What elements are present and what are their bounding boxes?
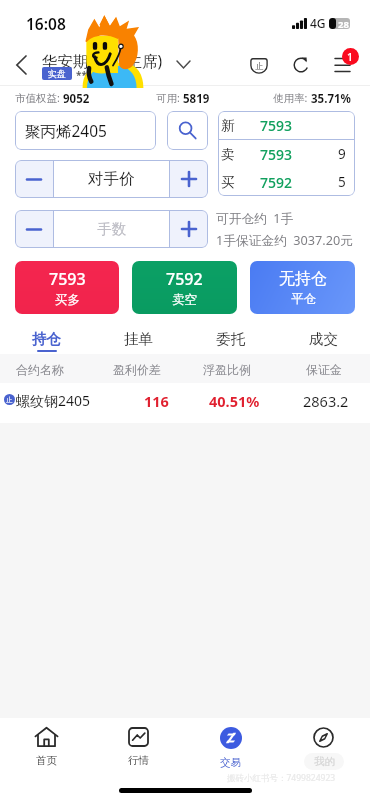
- button[interactable]: 行情: [92, 718, 184, 774]
- staticText: 2863.2: [303, 391, 349, 411]
- button[interactable]: Profile: [277, 718, 370, 774]
- button[interactable]: Refresh: [283, 47, 319, 83]
- staticText: 卖: [221, 146, 235, 163]
- staticText: 买多: [55, 292, 80, 308]
- button[interactable]: 聚丙烯2405: [15, 111, 156, 150]
- staticText: 对手价: [88, 169, 135, 189]
- staticText: 止: [6, 396, 13, 404]
- button[interactable]: Stop loss: [241, 47, 277, 83]
- button[interactable]: Decrease: [15, 210, 53, 248]
- staticText: 持仓: [32, 330, 61, 348]
- staticText: 首页: [36, 754, 57, 767]
- staticText: 浮盈比例: [203, 362, 251, 377]
- button[interactable]: 7592: [132, 261, 237, 314]
- button[interactable]: 止: [0, 383, 370, 423]
- button[interactable]: Back: [3, 47, 39, 83]
- staticText: 使用率:: [273, 91, 308, 105]
- button[interactable]: Increase: [170, 210, 208, 248]
- staticText: 卖空: [172, 292, 197, 308]
- staticText: 聚丙烯2405: [25, 120, 107, 141]
- staticText: 4G: [310, 15, 326, 31]
- staticText: 盈利价差: [113, 362, 161, 377]
- staticText: 5819: [183, 91, 210, 105]
- staticText: 成交: [309, 330, 338, 348]
- staticText: 买: [221, 174, 235, 191]
- staticText: 7593: [49, 268, 86, 290]
- staticText: 平仓: [291, 291, 316, 307]
- staticText: 9: [338, 145, 346, 163]
- button[interactable]: 挂单: [92, 330, 184, 356]
- staticText: 交易: [220, 756, 241, 769]
- button[interactable]: 无持仓: [250, 261, 355, 314]
- staticText: 保证金: [306, 362, 342, 377]
- staticText: 实盘: [48, 68, 66, 79]
- button[interactable]: 首页: [0, 718, 92, 774]
- button[interactable]: 手数: [54, 210, 169, 248]
- staticText: 7593: [260, 116, 293, 135]
- staticText: 1手保证金约 3037.20元: [216, 231, 353, 248]
- staticText: 华安期货01(主席): [42, 50, 163, 71]
- button[interactable]: 7593: [15, 261, 119, 314]
- button[interactable]: Menu: [326, 47, 362, 83]
- button[interactable]: Switch account: [172, 52, 196, 76]
- button[interactable]: 交易: [184, 718, 277, 774]
- staticText: **: [76, 68, 87, 82]
- staticText: 合约名称: [16, 362, 64, 377]
- staticText: 7592: [260, 173, 293, 192]
- staticText: 委托: [216, 330, 245, 348]
- staticText: 35.71%: [311, 91, 351, 105]
- staticText: 可开仓约 1手: [216, 209, 294, 226]
- staticText: 7593: [260, 145, 293, 164]
- button[interactable]: 对手价: [54, 160, 169, 198]
- staticText: 1: [347, 50, 354, 64]
- button[interactable]: 成交: [277, 330, 370, 356]
- button[interactable]: 委托: [184, 330, 277, 356]
- staticText: 我的: [314, 755, 335, 768]
- staticText: 5: [338, 173, 346, 191]
- button[interactable]: Increase: [170, 160, 208, 198]
- button[interactable]: 持仓: [0, 330, 92, 356]
- staticText: 手数: [97, 220, 126, 238]
- staticText: 螺纹钢2405: [16, 391, 91, 410]
- staticText: 7592: [166, 268, 203, 290]
- staticText: 无持仓: [279, 269, 327, 289]
- staticText: 行情: [128, 754, 149, 767]
- staticText: 市值权益:: [15, 91, 60, 105]
- staticText: 搬砖小红书号：7499824923: [227, 772, 336, 784]
- staticText: 28: [338, 18, 349, 29]
- button[interactable]: Search: [167, 111, 208, 150]
- staticText: 挂单: [124, 330, 153, 348]
- staticText: 新: [221, 117, 235, 134]
- staticText: 16:08: [26, 13, 66, 34]
- staticText: 止: [255, 61, 264, 72]
- staticText: 可用:: [156, 91, 180, 105]
- staticText: 116: [144, 391, 169, 411]
- staticText: 9052: [63, 91, 90, 105]
- button[interactable]: Decrease: [15, 160, 53, 198]
- staticText: 40.51%: [209, 391, 260, 411]
